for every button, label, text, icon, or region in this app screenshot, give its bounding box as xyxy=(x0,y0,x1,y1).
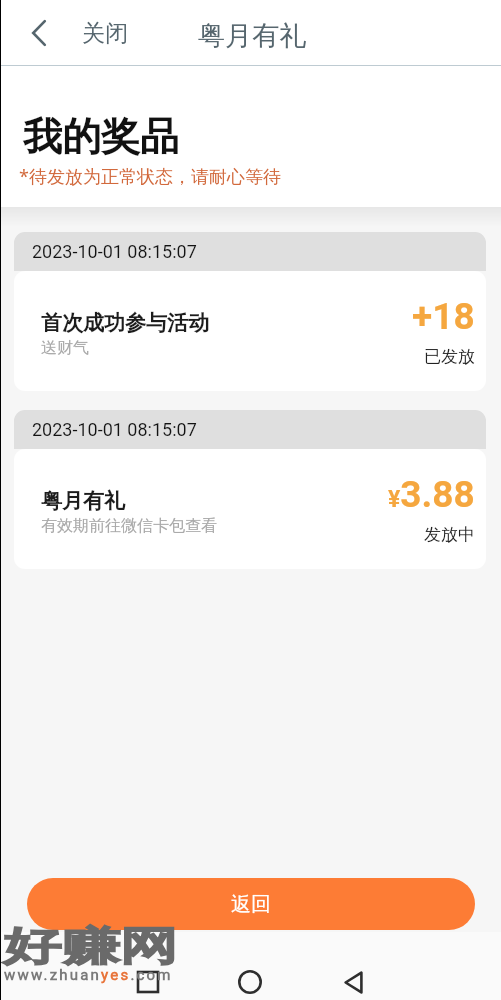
staticText: 首次成功参与活动 xyxy=(41,310,209,336)
button[interactable]: 2023-10-01 08:15:07 xyxy=(14,232,486,391)
button[interactable]: Back xyxy=(331,960,375,1000)
staticText: 2023-10-01 08:15:07 xyxy=(32,241,197,262)
staticText: 送财气 xyxy=(41,338,89,358)
staticText: ¥3.88 xyxy=(388,473,475,516)
staticText: 好赚网 xyxy=(3,921,178,971)
button[interactable]: 返回 xyxy=(27,878,475,930)
staticText: 关闭 xyxy=(82,19,128,48)
staticText: 发放中 xyxy=(424,524,475,545)
button[interactable]: Home xyxy=(228,960,272,1000)
staticText: 2023-10-01 08:15:07 xyxy=(32,419,197,440)
button[interactable]: Recent apps xyxy=(126,960,170,1000)
staticText: www.zhuanyes.com xyxy=(4,966,173,984)
staticText: 已发放 xyxy=(424,346,475,367)
staticText: +18 xyxy=(412,295,475,338)
staticText: 粤月有礼 xyxy=(198,19,306,53)
staticText: *待发放为正常状态，请耐心等待 xyxy=(19,164,281,189)
staticText: 有效期前往微信卡包查看 xyxy=(41,516,217,536)
button[interactable]: 关闭 xyxy=(82,0,128,66)
staticText: 粤月有礼 xyxy=(41,488,125,514)
button[interactable]: Back xyxy=(24,0,54,66)
button[interactable]: 2023-10-01 08:15:07 xyxy=(14,410,486,569)
staticText: 我的奖品 xyxy=(23,112,179,161)
staticText: 返回 xyxy=(231,892,271,917)
